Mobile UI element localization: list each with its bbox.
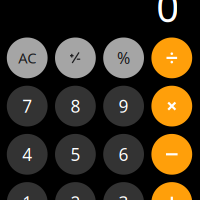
- staticText: 2: [70, 191, 80, 200]
- staticText: 3: [119, 191, 129, 200]
- staticText: 9: [119, 95, 129, 118]
- button[interactable]: Multiply: [151, 86, 192, 126]
- button[interactable]: 2: [55, 182, 96, 200]
- button[interactable]: Subtract: [151, 134, 192, 175]
- button[interactable]: %: [103, 37, 144, 78]
- staticText: 4: [22, 143, 32, 166]
- staticText: %: [117, 47, 130, 68]
- button[interactable]: 7: [7, 86, 48, 126]
- button[interactable]: 1: [7, 182, 48, 200]
- staticText: AC: [18, 48, 36, 68]
- staticText: 8: [70, 95, 80, 118]
- button[interactable]: 4: [7, 134, 48, 175]
- staticText: 0: [156, 0, 179, 33]
- button[interactable]: Divide: [151, 37, 192, 78]
- staticText: 6: [119, 143, 129, 166]
- staticText: 5: [70, 143, 80, 166]
- staticText: 1: [22, 191, 32, 200]
- button[interactable]: 6: [103, 134, 144, 175]
- staticText: 7: [22, 95, 32, 118]
- button[interactable]: AC: [7, 37, 48, 78]
- button[interactable]: 9: [103, 86, 144, 126]
- button[interactable]: Toggle sign: [55, 37, 96, 78]
- button[interactable]: 8: [55, 86, 96, 126]
- button[interactable]: 5: [55, 134, 96, 175]
- button[interactable]: 3: [103, 182, 144, 200]
- button[interactable]: Add: [151, 182, 192, 200]
